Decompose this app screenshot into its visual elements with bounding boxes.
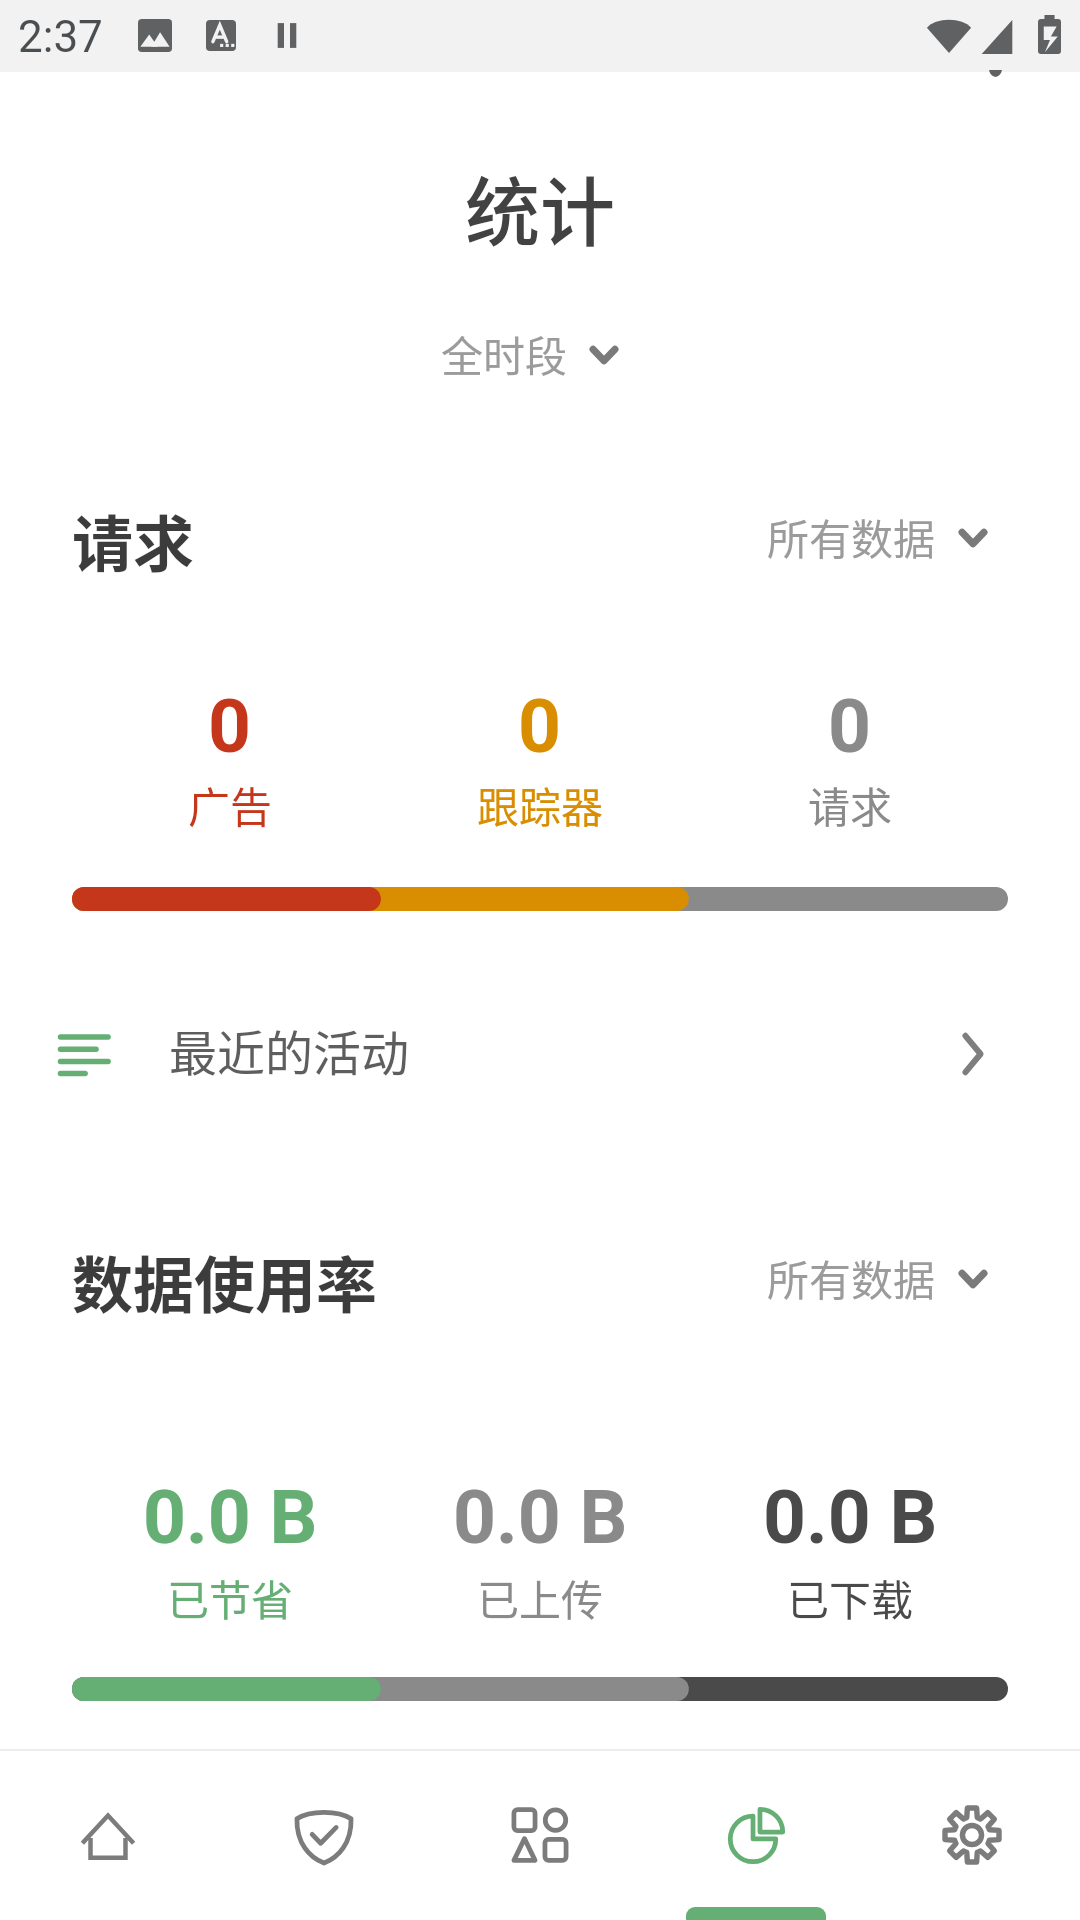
button[interactable]: Protection: [216, 1751, 432, 1920]
staticText: 已节省: [167, 1567, 294, 1628]
staticText: 0: [208, 682, 252, 770]
staticText: 请求: [808, 774, 893, 835]
button[interactable]: Home: [0, 1751, 216, 1920]
staticText: 2:37: [18, 11, 103, 63]
staticText: 跟踪器: [477, 774, 604, 835]
staticText: 数据使用率: [72, 1237, 378, 1317]
button[interactable]: 所有数据: [767, 1239, 995, 1316]
staticText: 0: [518, 682, 562, 770]
staticText: 0.0 B: [763, 1473, 938, 1561]
staticText: 请求: [72, 496, 195, 576]
staticText: 0.0 B: [453, 1473, 628, 1561]
staticText: 已下载: [787, 1567, 914, 1628]
staticText: 全时段: [441, 323, 568, 384]
button[interactable]: Statistics: [648, 1751, 864, 1920]
staticText: 所有数据: [767, 1247, 936, 1308]
button[interactable]: Settings: [864, 1751, 1080, 1920]
button[interactable]: 最近的活动: [0, 998, 1080, 1102]
staticText: 统计: [0, 153, 1080, 262]
staticText: 所有数据: [767, 506, 936, 567]
button[interactable]: Apps: [432, 1751, 648, 1920]
button[interactable]: 全时段: [433, 315, 634, 392]
staticText: 最近的活动: [169, 1015, 410, 1085]
staticText: 0.0 B: [143, 1473, 318, 1561]
button[interactable]: 所有数据: [767, 498, 995, 575]
staticText: 已上传: [477, 1567, 604, 1628]
staticText: 广告: [188, 774, 273, 835]
staticText: 0: [828, 682, 872, 770]
